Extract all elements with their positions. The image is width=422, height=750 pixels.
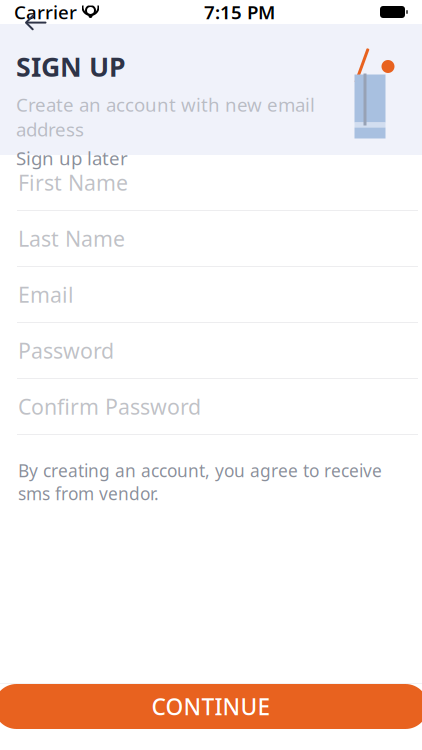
- staticText: By creating an account, you agree to rec…: [18, 459, 382, 505]
- staticText: SIGN UP: [16, 49, 126, 84]
- button[interactable]: CONTINUE: [0, 684, 422, 729]
- button[interactable]: Back: [16, 7, 56, 39]
- button[interactable]: First Name: [0, 155, 422, 211]
- staticText: Password: [18, 336, 114, 365]
- staticText: Confirm Password: [18, 392, 201, 421]
- button[interactable]: Sign up later: [16, 144, 128, 172]
- button[interactable]: Last Name: [0, 211, 422, 267]
- button[interactable]: Email: [0, 267, 422, 323]
- staticText: Carrier: [14, 0, 77, 24]
- staticText: Email: [18, 280, 74, 309]
- staticText: 7:15 PM: [204, 0, 275, 24]
- staticText: Last Name: [18, 224, 125, 253]
- button[interactable]: Confirm Password: [0, 379, 422, 435]
- staticText: Create an account with new email address: [16, 92, 315, 142]
- button[interactable]: Password: [0, 323, 422, 379]
- staticText: First Name: [18, 168, 128, 197]
- staticText: CONTINUE: [151, 691, 270, 721]
- staticText: Sign up later: [16, 146, 128, 170]
